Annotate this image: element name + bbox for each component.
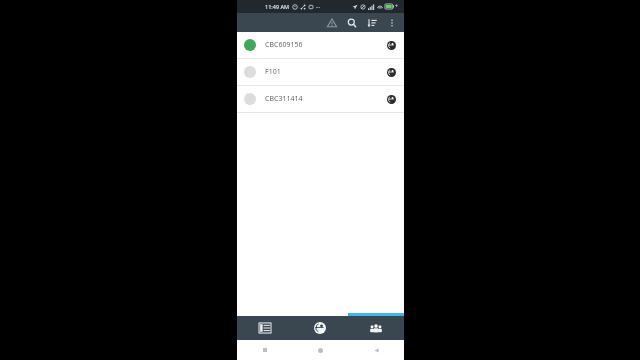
- button[interactable]: Search: [342, 13, 362, 32]
- staticText: +: [395, 3, 398, 10]
- button[interactable]: Back: [348, 340, 404, 360]
- button[interactable]: CBC609156: [237, 32, 404, 59]
- staticText: CBC311414: [265, 94, 303, 104]
- button[interactable]: CBC311414: [237, 86, 404, 113]
- staticText: F101: [265, 67, 281, 77]
- button[interactable]: Groups: [348, 316, 404, 340]
- button[interactable]: Map: [384, 92, 398, 106]
- staticText: ...: [316, 3, 321, 10]
- button[interactable]: Map: [384, 65, 398, 79]
- button[interactable]: Recent apps: [237, 340, 292, 360]
- button[interactable]: Map: [384, 38, 398, 52]
- staticText: 11:49 AM: [265, 3, 290, 10]
- button[interactable]: List: [237, 316, 292, 340]
- button[interactable]: Sort: [362, 13, 382, 32]
- button[interactable]: Warnings: [322, 13, 342, 32]
- button[interactable]: Home: [292, 340, 348, 360]
- button[interactable]: Map: [292, 316, 348, 340]
- staticText: CBC609156: [265, 40, 303, 50]
- button[interactable]: More options: [382, 13, 402, 32]
- button[interactable]: F101: [237, 59, 404, 86]
